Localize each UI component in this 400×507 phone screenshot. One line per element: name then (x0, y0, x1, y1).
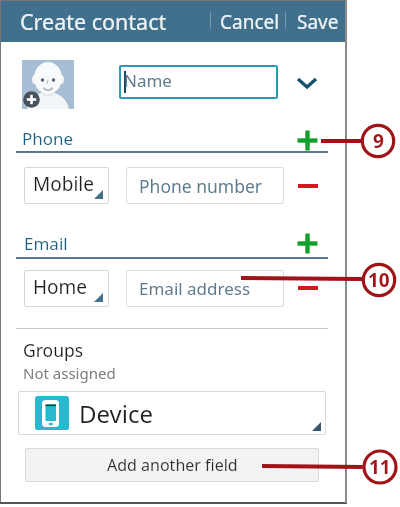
staticText: 9 (373, 128, 384, 154)
staticText: Add another field (107, 454, 238, 476)
staticText: Device (79, 397, 154, 430)
button[interactable]: Home (24, 270, 109, 307)
button[interactable] (297, 233, 318, 254)
staticText: Phone (22, 127, 74, 150)
button[interactable]: Phone number (126, 167, 284, 204)
staticText: Create contact (20, 7, 167, 36)
button[interactable] (297, 130, 318, 151)
staticText: Home (33, 274, 88, 300)
button[interactable]: Device (18, 391, 326, 435)
staticText: Not assigned (23, 363, 116, 383)
staticText: Email address (139, 277, 251, 300)
button[interactable] (292, 70, 322, 96)
button[interactable]: Name (119, 65, 278, 99)
staticText: 10 (368, 267, 390, 293)
button[interactable] (294, 176, 322, 196)
button[interactable]: Save (289, 1, 346, 42)
button[interactable]: Cancel (214, 1, 285, 42)
button[interactable]: Mobile (24, 167, 109, 204)
button[interactable]: Add another field (25, 448, 319, 482)
staticText: Groups (23, 338, 84, 362)
staticText: Mobile (33, 171, 94, 197)
staticText: Cancel (220, 9, 280, 35)
staticText: Email (24, 232, 68, 255)
button[interactable] (22, 60, 74, 109)
staticText: 11 (369, 454, 391, 480)
button[interactable]: Email address (126, 270, 284, 307)
staticText: Phone number (139, 174, 263, 198)
staticText: Name (124, 69, 172, 92)
staticText: Save (297, 9, 339, 35)
button[interactable] (294, 278, 322, 298)
